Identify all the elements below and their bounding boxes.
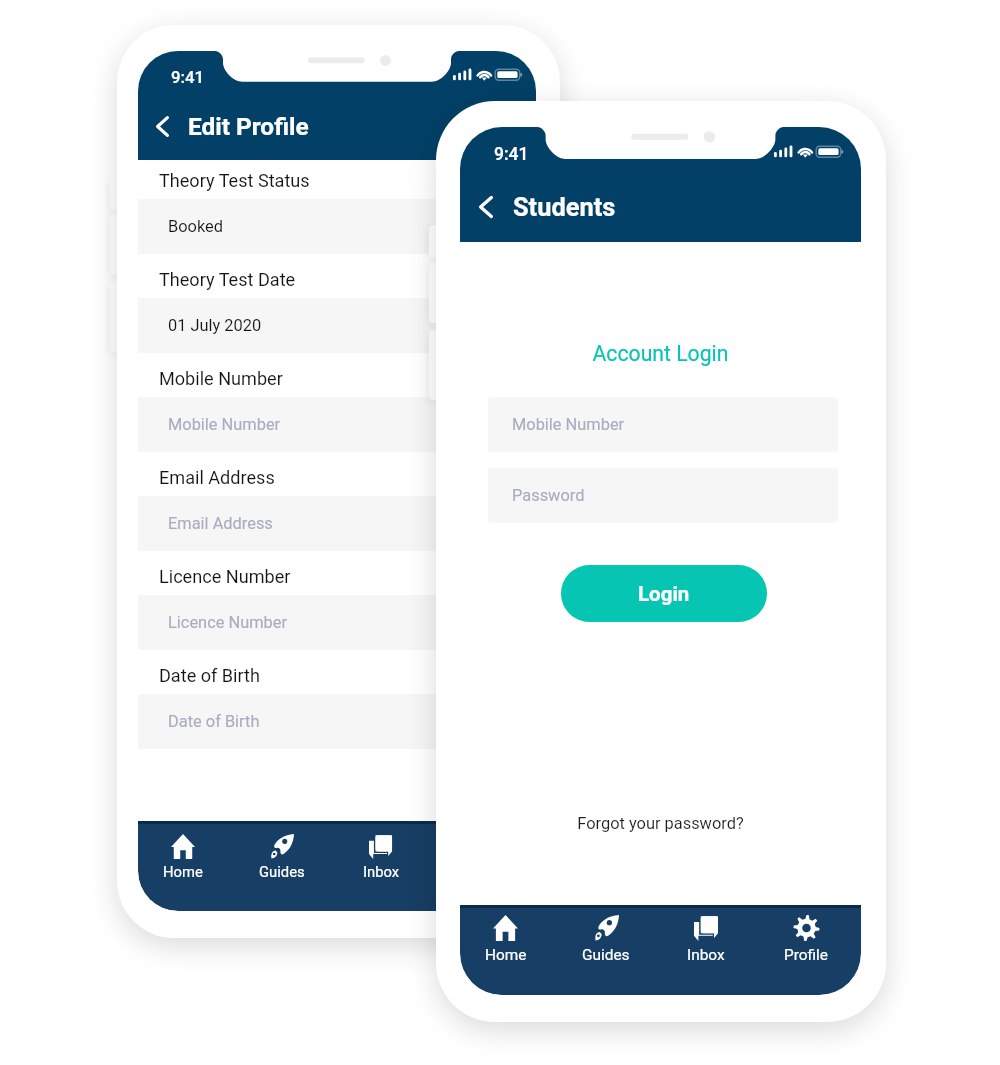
staticText: Home bbox=[163, 863, 203, 880]
button[interactable]: Guides bbox=[556, 915, 656, 964]
button[interactable]: Login bbox=[561, 565, 767, 622]
staticText: Date of Birth bbox=[159, 665, 260, 686]
staticText: Booked bbox=[168, 217, 223, 236]
staticText: Password bbox=[512, 486, 585, 505]
staticText: Home bbox=[485, 946, 527, 964]
button[interactable]: Mobile Number bbox=[488, 397, 838, 452]
button[interactable]: Profile bbox=[756, 915, 856, 964]
button[interactable]: Booked bbox=[138, 199, 536, 254]
button[interactable]: Date of Birth bbox=[138, 694, 536, 749]
staticText: Mobile Number bbox=[159, 368, 283, 389]
button[interactable]: Mobile Number bbox=[138, 397, 536, 452]
staticText: Inbox bbox=[363, 863, 400, 880]
staticText: 9:41 bbox=[494, 144, 529, 165]
staticText: Mobile Number bbox=[512, 415, 625, 434]
staticText: Theory Test Status bbox=[159, 170, 310, 191]
staticText: Profile bbox=[784, 946, 828, 964]
staticText: Guides bbox=[259, 863, 305, 880]
staticText: Students bbox=[513, 192, 616, 222]
button[interactable]: Email Address bbox=[138, 496, 536, 551]
staticText: 01 July 2020 bbox=[168, 316, 262, 335]
staticText: Edit Profile bbox=[188, 112, 309, 141]
staticText: Theory Test Date bbox=[159, 269, 296, 290]
staticText: Inbox bbox=[687, 946, 725, 964]
button[interactable]: Password bbox=[488, 468, 838, 523]
staticText: 9:41 bbox=[171, 67, 205, 87]
button[interactable]: Back bbox=[156, 116, 169, 137]
staticText: Licence Number bbox=[168, 613, 288, 632]
staticText: Email Address bbox=[159, 467, 275, 488]
staticText: Login bbox=[638, 582, 690, 606]
button[interactable]: Home bbox=[460, 915, 556, 964]
button[interactable]: Profile bbox=[431, 834, 531, 880]
button[interactable]: Inbox bbox=[656, 915, 756, 964]
button[interactable]: Forgot your password? bbox=[460, 814, 861, 833]
staticText: Guides bbox=[582, 946, 630, 964]
staticText: Date of Birth bbox=[168, 712, 260, 731]
button[interactable]: Home bbox=[138, 834, 232, 880]
button[interactable]: Guides bbox=[232, 834, 331, 880]
button[interactable]: Licence Number bbox=[138, 595, 536, 650]
staticText: Licence Number bbox=[159, 566, 291, 587]
staticText: Account Login bbox=[460, 341, 861, 366]
staticText: Mobile Number bbox=[168, 415, 281, 434]
button[interactable]: Back bbox=[479, 196, 493, 218]
staticText: Email Address bbox=[168, 514, 273, 533]
button[interactable]: Inbox bbox=[331, 834, 431, 880]
button[interactable]: 01 July 2020 bbox=[138, 298, 536, 353]
